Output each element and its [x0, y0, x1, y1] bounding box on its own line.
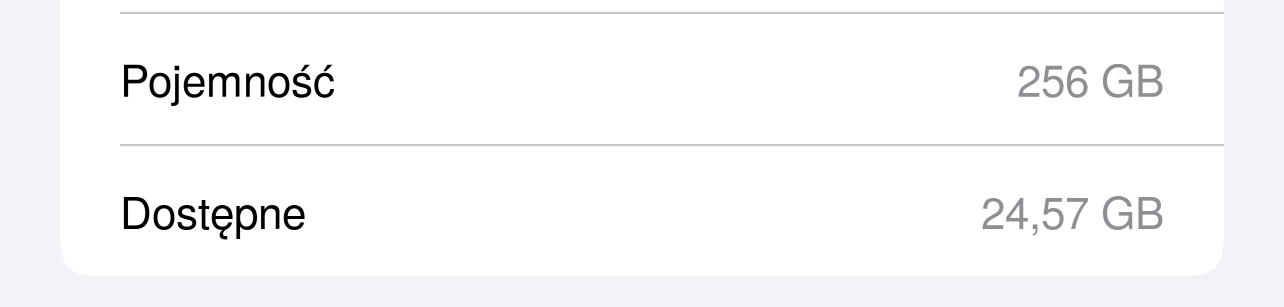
button[interactable]: Pojemność — [60, 14, 1224, 144]
button[interactable]: Dostępne — [60, 146, 1224, 276]
staticText: Pojemność — [120, 46, 335, 109]
staticText: 24,57 GB — [981, 178, 1164, 241]
staticText: 256 GB — [1017, 46, 1164, 109]
staticText: Dostępne — [120, 178, 306, 241]
